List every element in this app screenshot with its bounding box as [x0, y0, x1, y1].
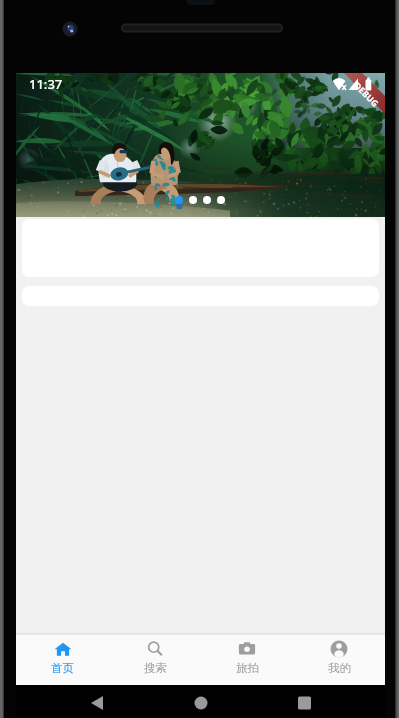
button[interactable]: 首页 [16, 635, 109, 685]
button[interactable]: 旅拍 [201, 635, 293, 685]
staticText: 首页 [51, 661, 74, 675]
staticText: DEBUG [351, 80, 382, 110]
staticText: 我的 [328, 661, 351, 675]
staticText: 旅拍 [236, 661, 259, 675]
staticText: 11:37 [29, 75, 63, 93]
button[interactable]: 搜索 [109, 635, 201, 685]
button[interactable]: 我的 [293, 635, 385, 685]
staticText: 搜索 [144, 661, 167, 675]
